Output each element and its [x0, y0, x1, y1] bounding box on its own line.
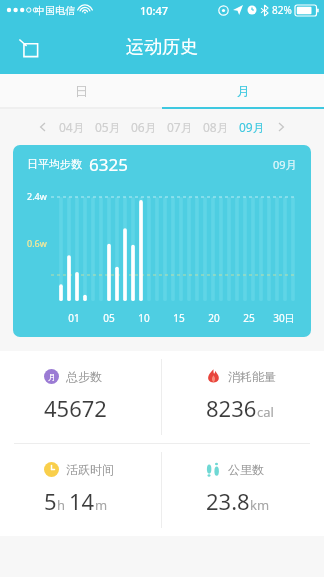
button[interactable]: 04月	[59, 119, 85, 135]
staticText: 06月	[131, 119, 157, 135]
staticText: 0.6w	[27, 237, 47, 249]
button[interactable]: 08月	[203, 119, 229, 135]
staticText: 23.8	[206, 486, 250, 516]
staticText: 05月	[95, 119, 121, 135]
staticText: 月	[48, 372, 56, 382]
staticText: 运动历史	[126, 36, 198, 59]
button[interactable]: Back	[8, 27, 48, 67]
staticText: 08月	[203, 119, 229, 135]
staticText: 10	[138, 311, 150, 325]
staticText: 8236	[206, 393, 257, 423]
staticText: 日平均步数	[27, 157, 82, 171]
staticText: h	[57, 496, 69, 514]
staticText: m	[95, 496, 108, 514]
staticText: 25	[243, 311, 255, 325]
staticText: 总步数	[66, 369, 102, 384]
staticText: 09月	[273, 157, 297, 172]
staticText: 活跃时间	[66, 462, 114, 477]
button[interactable]: 消耗能量	[162, 351, 324, 443]
staticText: km	[250, 496, 270, 514]
button[interactable]: Next	[270, 116, 292, 138]
staticText: 日	[75, 83, 88, 99]
button[interactable]: 06月	[131, 119, 157, 135]
staticText: 82%	[272, 3, 292, 17]
staticText: 月	[237, 83, 250, 99]
button[interactable]: 月	[162, 74, 324, 107]
staticText: 04月	[59, 119, 85, 135]
staticText: 05	[103, 311, 115, 325]
button[interactable]: 07月	[167, 119, 193, 135]
button[interactable]: 公里数	[162, 444, 324, 536]
staticText: 20	[208, 311, 220, 325]
staticText: 30日	[273, 311, 295, 325]
staticText: 14	[69, 486, 95, 516]
button[interactable]: 月	[0, 351, 161, 443]
staticText: 5	[44, 486, 57, 516]
staticText: 公里数	[228, 462, 264, 477]
staticText: 10:47	[140, 3, 169, 18]
button[interactable]: 09月	[239, 119, 265, 135]
button[interactable]: 日平均步数	[13, 145, 311, 337]
button[interactable]: 日	[0, 74, 162, 107]
staticText: 2.4w	[27, 190, 47, 202]
button[interactable]: 活跃时间	[0, 444, 161, 536]
staticText: 45672	[44, 393, 107, 423]
button[interactable]: Previous	[32, 116, 54, 138]
staticText: 15	[173, 311, 185, 325]
staticText: 07月	[167, 119, 193, 135]
staticText: 中国电信	[35, 4, 75, 17]
staticText: 01	[68, 311, 80, 325]
staticText: 6325	[89, 153, 128, 176]
staticText: 09月	[239, 119, 265, 135]
staticText: cal	[257, 403, 274, 421]
button[interactable]: 05月	[95, 119, 121, 135]
staticText: 消耗能量	[228, 369, 276, 384]
